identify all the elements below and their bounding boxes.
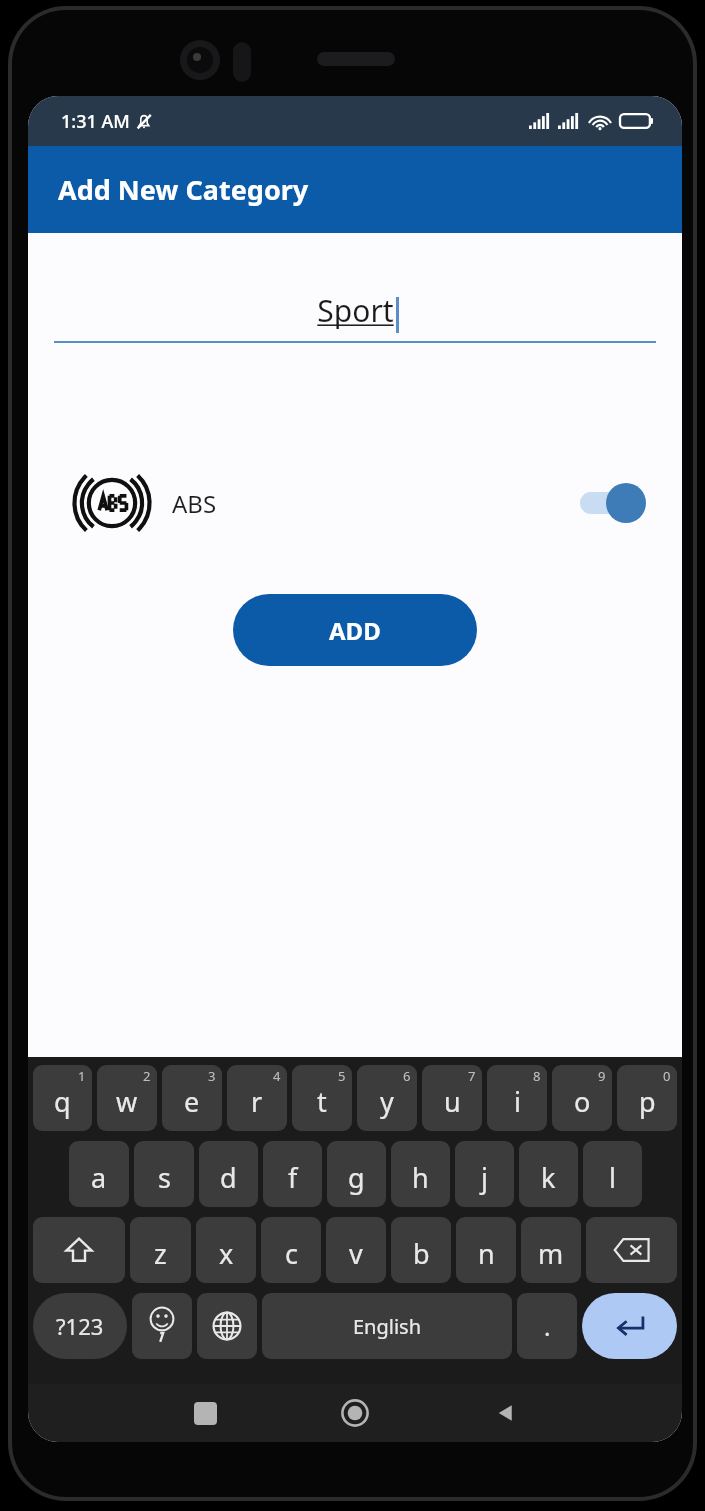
button[interactable]: s <box>134 1141 194 1207</box>
staticText: j <box>481 1159 488 1196</box>
staticText: k <box>541 1159 556 1196</box>
button[interactable]: . <box>517 1293 577 1359</box>
staticText: h <box>412 1159 429 1196</box>
button[interactable]: e <box>162 1065 222 1131</box>
staticText: 7 <box>468 1067 476 1085</box>
button[interactable]: o <box>552 1065 612 1131</box>
button[interactable]: p <box>617 1065 677 1131</box>
button[interactable]: z <box>130 1217 191 1283</box>
staticText: b <box>413 1235 430 1272</box>
button[interactable]: ABS indicator <box>72 465 652 541</box>
staticText: 8 <box>533 1067 541 1085</box>
button[interactable]: Backspace <box>586 1217 677 1283</box>
button[interactable]: m <box>521 1217 581 1283</box>
staticText: a <box>91 1159 107 1196</box>
button[interactable]: c <box>261 1217 321 1283</box>
staticText: . <box>544 1310 551 1343</box>
button[interactable]: f <box>263 1141 322 1207</box>
staticText: ?123 <box>56 1311 104 1341</box>
staticText: q <box>54 1083 71 1120</box>
staticText: d <box>220 1159 237 1196</box>
button[interactable]: Sport <box>54 271 656 343</box>
staticText: p <box>639 1083 656 1120</box>
staticText: v <box>349 1235 363 1272</box>
button[interactable]: Language <box>197 1293 257 1359</box>
button[interactable]: ADD <box>233 594 477 666</box>
staticText: i <box>514 1083 521 1120</box>
button[interactable]: g <box>327 1141 386 1207</box>
button[interactable]: k <box>519 1141 578 1207</box>
button[interactable]: q <box>33 1065 92 1131</box>
button[interactable]: b <box>391 1217 451 1283</box>
button[interactable]: ?123 <box>33 1293 127 1359</box>
button[interactable]: t <box>292 1065 352 1131</box>
staticText: 6 <box>403 1067 411 1085</box>
button[interactable]: r <box>227 1065 287 1131</box>
staticText: Sport <box>317 290 394 331</box>
staticText: 9 <box>598 1067 606 1085</box>
staticText: y <box>380 1083 394 1120</box>
button[interactable]: a <box>69 1141 129 1207</box>
button[interactable]: Home <box>280 1384 430 1442</box>
staticText: s <box>158 1159 171 1196</box>
staticText: x <box>219 1235 234 1272</box>
button[interactable]: Back <box>430 1384 580 1442</box>
staticText: ADD <box>329 614 381 647</box>
staticText: 1:31 AM <box>61 109 130 134</box>
staticText: r <box>251 1083 263 1120</box>
staticText: m <box>538 1235 564 1272</box>
staticText: f <box>288 1159 298 1196</box>
staticText: n <box>478 1235 495 1272</box>
staticText: o <box>574 1083 591 1120</box>
other: ABS indicator <box>72 465 152 541</box>
button[interactable]: Recents <box>130 1384 280 1442</box>
button[interactable]: Emoji <box>132 1293 192 1359</box>
staticText: l <box>609 1159 616 1196</box>
staticText: u <box>444 1083 461 1120</box>
staticText: ABS <box>172 487 217 520</box>
button[interactable]: Shift <box>33 1217 125 1283</box>
staticText: 5 <box>338 1067 346 1085</box>
button[interactable]: y <box>357 1065 417 1131</box>
staticText: 3 <box>208 1067 216 1085</box>
staticText: Add New Category <box>58 171 309 208</box>
button[interactable]: h <box>391 1141 450 1207</box>
button[interactable]: i <box>487 1065 547 1131</box>
button[interactable]: Enter <box>582 1293 677 1359</box>
staticText: w <box>116 1083 138 1120</box>
button[interactable]: w <box>97 1065 157 1131</box>
staticText: 2 <box>143 1067 151 1085</box>
staticText: z <box>154 1235 167 1272</box>
staticText: t <box>317 1083 327 1120</box>
staticText: English <box>353 1313 422 1340</box>
button[interactable]: n <box>456 1217 516 1283</box>
staticText: e <box>184 1083 200 1120</box>
button[interactable]: u <box>422 1065 482 1131</box>
button[interactable]: ABS toggle <box>576 479 652 527</box>
staticText: 1 <box>78 1067 86 1085</box>
button[interactable]: l <box>583 1141 642 1207</box>
staticText: 4 <box>273 1067 281 1085</box>
staticText: c <box>285 1235 298 1272</box>
button[interactable]: English <box>262 1293 512 1359</box>
staticText: 0 <box>663 1067 671 1085</box>
staticText: g <box>348 1159 365 1196</box>
button[interactable]: v <box>326 1217 386 1283</box>
button[interactable]: d <box>199 1141 258 1207</box>
button[interactable]: x <box>196 1217 256 1283</box>
button[interactable]: j <box>455 1141 514 1207</box>
